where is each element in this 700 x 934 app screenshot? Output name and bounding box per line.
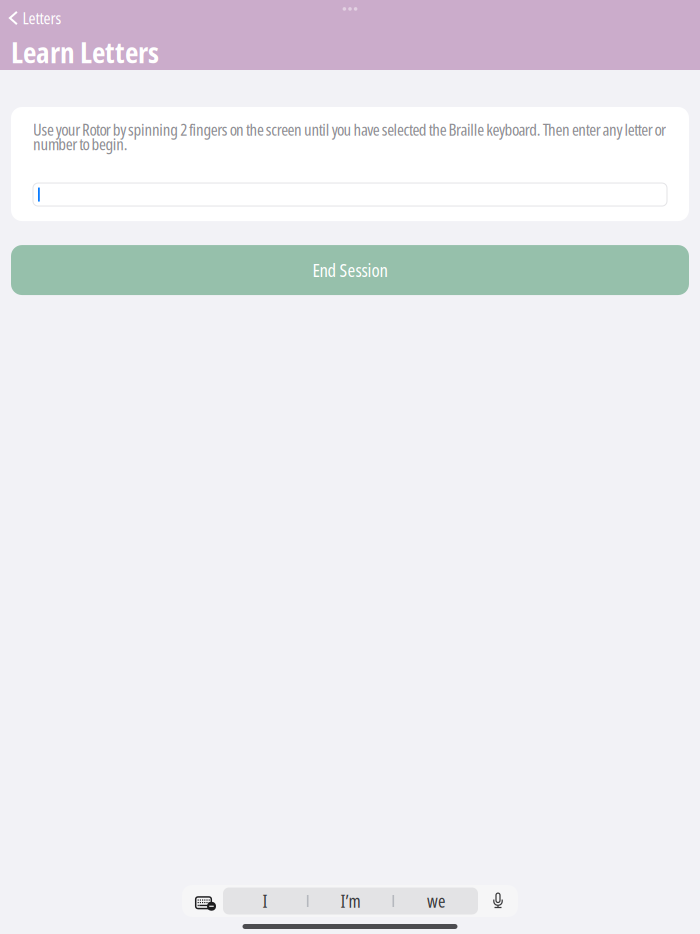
button[interactable]: I’m — [308, 887, 392, 914]
button[interactable]: Letters — [0, 0, 700, 32]
button[interactable]: we — [394, 887, 478, 914]
button[interactable]: Dictate — [478, 885, 518, 917]
button[interactable]: Hide keyboard — [182, 885, 223, 917]
staticText: Use your Rotor by spinning 2 fingers on … — [33, 122, 666, 151]
button[interactable]: End Session — [11, 245, 689, 295]
staticText: End Session — [312, 258, 387, 282]
staticText: I — [262, 889, 267, 913]
staticText: I’m — [340, 889, 360, 913]
staticText: we — [427, 889, 445, 913]
button[interactable]: I — [223, 887, 307, 914]
staticText: Letters — [22, 7, 61, 29]
staticText: Learn Letters — [11, 32, 159, 72]
